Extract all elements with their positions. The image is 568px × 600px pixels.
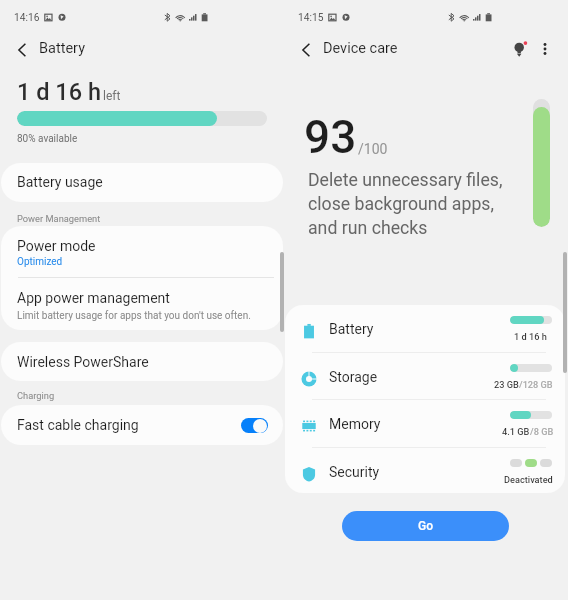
staticText: Power mode <box>17 238 96 254</box>
staticText: Go <box>418 519 434 533</box>
button[interactable]: Battery usage <box>1 163 283 202</box>
button[interactable] <box>1 226 283 277</box>
button[interactable]: Tips <box>507 36 533 62</box>
button[interactable]: Memory <box>285 400 565 447</box>
staticText: Charging <box>17 390 55 401</box>
button[interactable] <box>1 278 283 330</box>
staticText: Power Management <box>17 213 101 224</box>
staticText: Memory <box>329 416 381 432</box>
staticText: Delete unnecessary files, close backgrou… <box>308 170 503 238</box>
other: Fast cable charging toggle <box>241 418 268 433</box>
button[interactable]: Navigate up <box>294 38 318 62</box>
button[interactable]: Go <box>342 511 509 541</box>
staticText: /100 <box>358 141 388 157</box>
staticText: Security <box>329 464 380 480</box>
button[interactable]: More options <box>532 36 558 62</box>
staticText: Battery <box>329 321 374 337</box>
staticText: 14:15 <box>298 12 324 24</box>
staticText: /8 GB <box>530 426 554 437</box>
button[interactable]: Battery <box>285 305 565 352</box>
staticText: Storage <box>329 369 378 385</box>
staticText: 93 <box>304 110 357 164</box>
staticText: Battery usage <box>17 174 103 190</box>
button[interactable] <box>32 36 152 62</box>
button[interactable]: Wireless PowerShare <box>1 342 283 381</box>
staticText: 1 d 16 h <box>17 78 101 106</box>
button[interactable]: Storage <box>285 353 565 399</box>
staticText: Battery <box>39 40 85 57</box>
button[interactable]: Fast cable charging <box>1 405 283 445</box>
button[interactable]: Navigate up <box>10 38 34 62</box>
staticText: Limit battery usage for apps that you do… <box>17 310 251 322</box>
staticText: Optimized <box>17 256 63 268</box>
staticText: Deactivated <box>504 474 553 485</box>
staticText: 80% available <box>17 133 78 145</box>
button[interactable] <box>316 36 436 62</box>
staticText: 1 d 16 h <box>514 331 547 342</box>
staticText: Fast cable charging <box>17 417 139 433</box>
button[interactable]: Security <box>285 448 565 493</box>
staticText: Device care <box>323 40 398 57</box>
staticText: /128 GB <box>519 379 553 390</box>
staticText: left <box>103 89 121 103</box>
staticText: App power management <box>17 290 170 306</box>
staticText: Wireless PowerShare <box>17 354 149 370</box>
staticText: 23 GB <box>494 379 519 390</box>
staticText: 14:16 <box>14 12 40 24</box>
staticText: 4.1 GB <box>502 426 530 437</box>
